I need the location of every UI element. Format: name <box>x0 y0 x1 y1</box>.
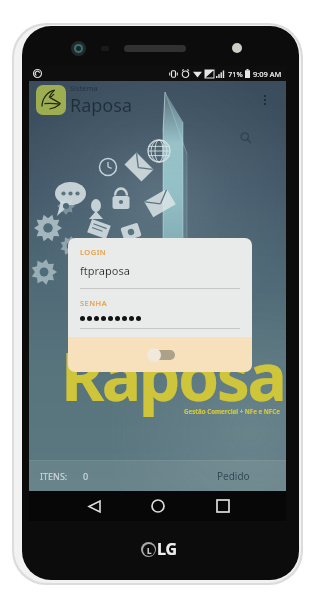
button[interactable]: Recents <box>200 491 246 521</box>
staticText: ITENS: <box>40 470 68 482</box>
staticText: ftpraposa <box>80 263 130 278</box>
staticText: Pedido <box>217 469 250 483</box>
button[interactable]: Search <box>234 126 258 150</box>
staticText: LG <box>157 538 178 560</box>
staticText: SENHA <box>80 298 108 308</box>
staticText: 9:09 AM <box>253 69 282 79</box>
button[interactable]: More options <box>250 85 280 115</box>
button[interactable]: Back <box>71 491 117 521</box>
button[interactable]: Home <box>135 491 181 521</box>
staticText: 71% <box>228 69 243 79</box>
staticText: LOGIN <box>80 247 107 257</box>
button[interactable]: Remember me toggle <box>143 347 177 362</box>
staticText: 0 <box>83 470 89 482</box>
staticText: Gestão Comercial + NFe e NFCe <box>180 407 284 415</box>
staticText: Raposa <box>61 330 285 420</box>
staticText: Raposa <box>70 93 132 118</box>
staticText: Sistema <box>70 83 98 93</box>
staticText: L <box>147 545 152 556</box>
